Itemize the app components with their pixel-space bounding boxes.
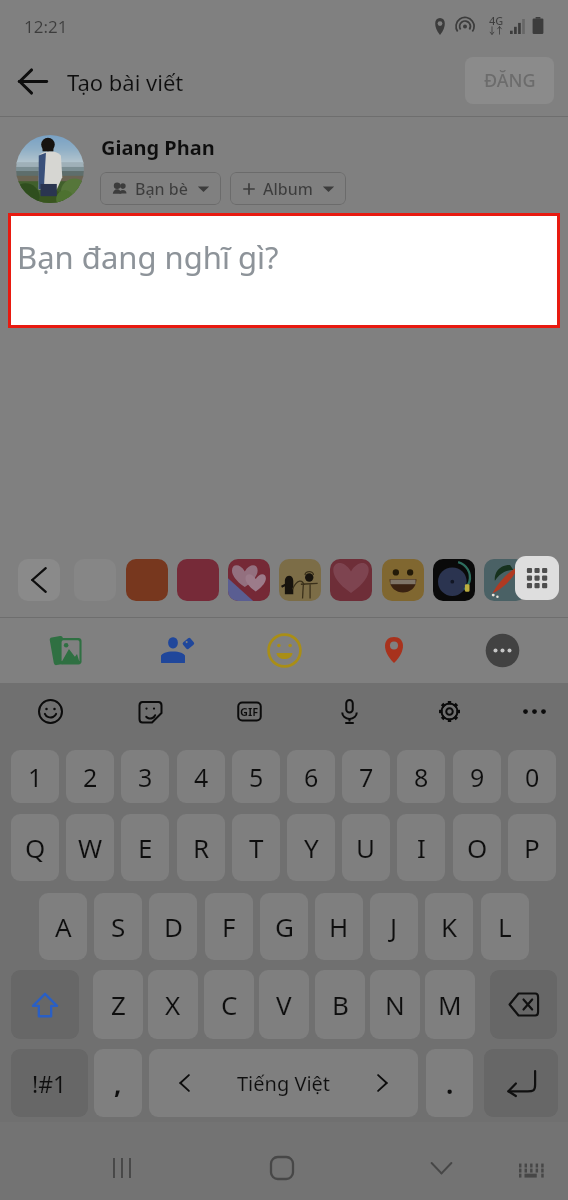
button[interactable]: Stickers: [126, 687, 174, 735]
button[interactable]: F: [205, 893, 253, 960]
button[interactable]: Backspace: [490, 970, 557, 1039]
button[interactable]: Back: [417, 1144, 465, 1192]
button[interactable]: Album: [230, 172, 346, 205]
button[interactable]: 8: [397, 750, 445, 803]
button[interactable]: Hide keyboard: [508, 1148, 552, 1192]
staticText: Z: [111, 987, 126, 1022]
button[interactable]: 2: [66, 750, 114, 803]
button[interactable]: N: [370, 970, 420, 1039]
staticText: 8: [414, 760, 429, 794]
button[interactable]: 4: [177, 750, 225, 803]
button[interactable]: K: [425, 893, 473, 960]
button[interactable]: Q: [11, 814, 59, 881]
button[interactable]: !#1: [11, 1049, 88, 1117]
button[interactable]: Check in: [367, 623, 421, 677]
button[interactable]: ,: [94, 1049, 142, 1117]
staticText: Giang Phan: [101, 134, 215, 161]
staticText: D: [164, 909, 183, 944]
button[interactable]: Sticker: [433, 559, 475, 601]
button[interactable]: P: [508, 814, 556, 881]
button[interactable]: E: [121, 814, 169, 881]
button[interactable]: Profile photo: [16, 135, 84, 203]
button[interactable]: More options: [475, 623, 529, 677]
button[interactable]: R: [177, 814, 225, 881]
button[interactable]: 0: [508, 750, 556, 803]
button[interactable]: Sticker: [484, 559, 526, 601]
staticText: P: [524, 830, 540, 865]
button[interactable]: Bạn bè: [100, 172, 221, 205]
button[interactable]: Sticker: [279, 559, 321, 601]
button[interactable]: Tag people: [149, 623, 203, 677]
button[interactable]: Sticker: [382, 559, 424, 601]
button[interactable]: Sticker: [126, 559, 168, 601]
button[interactable]: C: [204, 970, 254, 1039]
button[interactable]: Home: [258, 1144, 306, 1192]
button[interactable]: M: [425, 970, 475, 1039]
staticText: H: [329, 909, 349, 944]
button[interactable]: Previous: [18, 559, 60, 601]
staticText: ,: [114, 1066, 122, 1101]
button[interactable]: J: [370, 893, 418, 960]
staticText: C: [221, 987, 238, 1022]
button[interactable]: All stickers: [515, 556, 559, 600]
staticText: 5: [249, 760, 264, 794]
button[interactable]: .: [426, 1049, 473, 1117]
button[interactable]: X: [148, 970, 198, 1039]
button[interactable]: Recents: [98, 1144, 146, 1192]
button[interactable]: GIF: [225, 687, 273, 735]
button[interactable]: Tiếng Việt: [149, 1049, 418, 1117]
button[interactable]: Enter: [484, 1049, 558, 1117]
staticText: !#1: [32, 1068, 67, 1099]
button[interactable]: Photo or video: [39, 623, 93, 677]
button[interactable]: Sticker: [177, 559, 219, 601]
button[interactable]: T: [232, 814, 280, 881]
button[interactable]: More: [510, 687, 558, 735]
button[interactable]: U: [342, 814, 390, 881]
button[interactable]: 1: [11, 750, 59, 803]
button[interactable]: Emoji: [26, 687, 74, 735]
staticText: N: [385, 987, 405, 1022]
button[interactable]: 7: [342, 750, 390, 803]
button[interactable]: Keyboard settings: [425, 687, 473, 735]
button[interactable]: Sticker: [330, 559, 372, 601]
button[interactable]: Y: [287, 814, 335, 881]
button[interactable]: ĐĂNG: [465, 57, 554, 104]
button[interactable]: O: [453, 814, 501, 881]
staticText: M: [438, 987, 462, 1022]
button[interactable]: Z: [93, 970, 143, 1039]
button[interactable]: I: [397, 814, 445, 881]
button[interactable]: Sticker: [228, 559, 270, 601]
button[interactable]: L: [481, 893, 529, 960]
button[interactable]: S: [94, 893, 142, 960]
staticText: .: [446, 1066, 454, 1101]
staticText: R: [193, 830, 210, 865]
button[interactable]: D: [149, 893, 197, 960]
staticText: W: [78, 830, 103, 865]
button[interactable]: B: [315, 970, 365, 1039]
staticText: G: [275, 909, 294, 944]
button[interactable]: Voice input: [325, 687, 373, 735]
button[interactable]: H: [315, 893, 363, 960]
button[interactable]: 6: [287, 750, 335, 803]
button[interactable]: V: [259, 970, 309, 1039]
button[interactable]: Back: [10, 59, 54, 103]
button[interactable]: Feeling / activity: [257, 623, 311, 677]
staticText: U: [356, 830, 376, 865]
button[interactable]: W: [66, 814, 114, 881]
button[interactable]: G: [260, 893, 308, 960]
button[interactable]: Bạn đang nghĩ gì?: [11, 216, 557, 325]
staticText: 0: [525, 760, 540, 794]
staticText: X: [165, 987, 181, 1022]
button[interactable]: 9: [453, 750, 501, 803]
staticText: S: [111, 909, 126, 944]
button[interactable]: 3: [121, 750, 169, 803]
staticText: J: [390, 909, 398, 944]
staticText: Tạo bài viết: [67, 67, 184, 97]
button[interactable]: Shift: [11, 970, 79, 1039]
staticText: Q: [25, 830, 46, 865]
button[interactable]: 5: [232, 750, 280, 803]
button[interactable]: A: [39, 893, 87, 960]
staticText: 2: [83, 760, 98, 794]
staticText: Album: [263, 178, 313, 200]
